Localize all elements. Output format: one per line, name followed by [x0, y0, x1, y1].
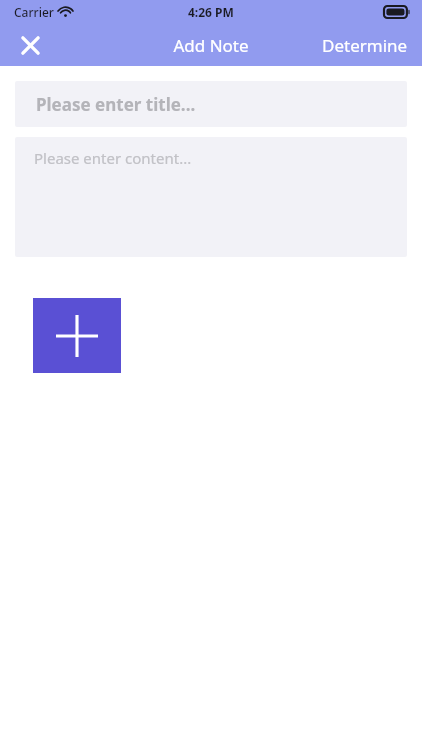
button[interactable]: Close [10, 25, 50, 65]
staticText: Please enter title... [36, 93, 196, 116]
staticText: Carrier [14, 4, 54, 20]
button[interactable]: Please enter title... [15, 81, 407, 127]
button[interactable]: Determine [308, 25, 422, 66]
staticText: Please enter content... [34, 148, 192, 168]
button[interactable]: Add image [33, 298, 121, 373]
button[interactable]: Please enter content... [15, 137, 407, 257]
staticText: Determine [322, 34, 408, 57]
staticText: 4:26 PM [188, 4, 234, 20]
staticText: Add Note [173, 34, 249, 57]
